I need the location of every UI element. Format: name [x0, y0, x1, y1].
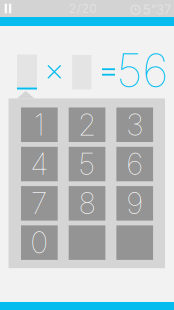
- staticText: 8: [79, 186, 95, 221]
- staticText: 3: [127, 107, 143, 142]
- button[interactable]: 2: [69, 107, 105, 142]
- button[interactable]: 6: [116, 147, 153, 181]
- button[interactable]: Pause: [0, 0, 16, 17]
- button[interactable]: Blank key: [116, 225, 153, 260]
- button[interactable]: Blank key: [69, 225, 105, 260]
- staticText: 2: [79, 107, 96, 142]
- staticText: 6: [127, 146, 143, 182]
- staticText: 2/20: [69, 1, 96, 15]
- staticText: 9: [127, 186, 143, 221]
- button[interactable]: 7: [21, 186, 58, 221]
- button[interactable]: 1: [21, 107, 58, 142]
- staticText: 4: [31, 146, 48, 182]
- button[interactable]: 0: [21, 225, 58, 260]
- button[interactable]: 9: [116, 186, 153, 221]
- staticText: 0: [31, 225, 48, 260]
- button[interactable]: 5: [69, 147, 105, 181]
- staticText: 56: [116, 42, 168, 98]
- button[interactable]: 8: [69, 186, 105, 221]
- staticText: 5”37: [143, 2, 171, 17]
- staticText: 5: [79, 146, 95, 182]
- staticText: 7: [31, 186, 47, 221]
- staticText: 1: [34, 107, 44, 142]
- button[interactable]: 3: [116, 107, 153, 142]
- button[interactable]: 4: [21, 147, 58, 181]
